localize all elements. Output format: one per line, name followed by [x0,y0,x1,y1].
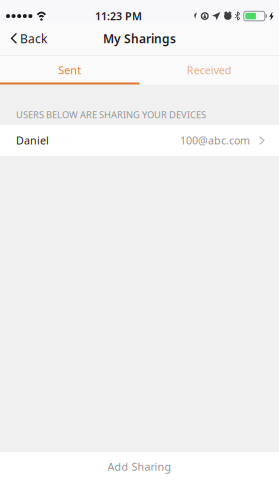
staticText: 100@abc.com [180,133,250,147]
button[interactable]: Add Sharing [0,452,279,481]
button[interactable]: Back [0,22,57,54]
staticText: 11:23 PM [95,9,142,23]
staticText: USERS BELOW ARE SHARING YOUR DEVICES [16,108,206,121]
button[interactable]: Sent [0,55,139,84]
staticText: Daniel [16,133,49,147]
staticText: Sent [58,63,81,77]
button[interactable]: Daniel [0,125,279,156]
staticText: Back [20,30,47,46]
button[interactable]: Received [139,55,279,84]
staticText: Received [187,63,232,77]
staticText: Add Sharing [107,459,171,474]
staticText: My Sharings [103,30,176,46]
